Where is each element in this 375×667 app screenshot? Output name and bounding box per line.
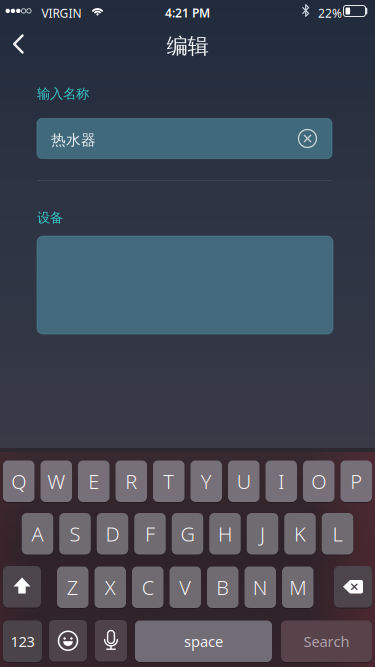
button[interactable]: R bbox=[115, 460, 147, 502]
button[interactable]: Delete bbox=[334, 566, 372, 608]
button[interactable]: P bbox=[340, 460, 372, 502]
button[interactable]: Emoji bbox=[49, 620, 87, 662]
staticText: K bbox=[294, 520, 306, 547]
button[interactable]: Q bbox=[3, 460, 34, 502]
staticText: VIRGIN bbox=[41, 5, 81, 21]
button[interactable]: Search bbox=[281, 620, 372, 662]
button[interactable]: Clear text bbox=[294, 125, 320, 151]
button[interactable]: W bbox=[40, 460, 72, 502]
staticText: Y bbox=[201, 468, 212, 495]
staticText: 4:21 PM bbox=[165, 5, 210, 21]
staticText: 热水器 bbox=[51, 131, 96, 149]
button[interactable]: S bbox=[59, 512, 91, 555]
button[interactable]: Back bbox=[0, 0, 44, 44]
staticText: O bbox=[311, 468, 326, 495]
staticText: T bbox=[163, 468, 174, 495]
staticText: Q bbox=[11, 468, 26, 495]
button[interactable]: I bbox=[265, 460, 297, 502]
staticText: C bbox=[142, 574, 154, 601]
button[interactable]: B bbox=[207, 566, 238, 608]
staticText: D bbox=[105, 520, 119, 547]
button[interactable]: Y bbox=[190, 460, 222, 502]
button[interactable]: C bbox=[132, 566, 163, 608]
button[interactable]: 热水器 bbox=[37, 118, 332, 158]
button[interactable]: Shift bbox=[3, 566, 41, 608]
staticText: 22% bbox=[318, 5, 342, 21]
button[interactable]: F bbox=[134, 512, 166, 555]
staticText: R bbox=[125, 468, 137, 495]
staticText: G bbox=[180, 520, 194, 547]
button[interactable]: L bbox=[322, 512, 353, 555]
button[interactable]: space bbox=[135, 620, 272, 662]
button[interactable]: V bbox=[169, 566, 201, 608]
button[interactable]: 123 bbox=[3, 620, 42, 662]
staticText: W bbox=[47, 468, 65, 495]
staticText: S bbox=[69, 520, 80, 547]
staticText: 输入名称 bbox=[37, 85, 89, 102]
staticText: N bbox=[253, 574, 268, 601]
button[interactable]: T bbox=[153, 460, 184, 502]
button[interactable]: N bbox=[244, 566, 276, 608]
button[interactable]: Z bbox=[57, 566, 88, 608]
button[interactable]: A bbox=[22, 512, 53, 555]
staticText: 设备 bbox=[37, 209, 63, 226]
staticText: I bbox=[278, 468, 284, 495]
button[interactable]: K bbox=[284, 512, 316, 555]
staticText: B bbox=[216, 574, 229, 601]
staticText: 编辑 bbox=[166, 33, 208, 59]
button[interactable]: E bbox=[78, 460, 109, 502]
button[interactable]: D bbox=[97, 512, 128, 555]
staticText: H bbox=[218, 520, 232, 547]
staticText: Z bbox=[67, 574, 79, 601]
staticText: space bbox=[184, 631, 223, 651]
staticText: X bbox=[105, 574, 116, 601]
button[interactable]: O bbox=[303, 460, 334, 502]
staticText: P bbox=[350, 468, 362, 495]
staticText: L bbox=[332, 520, 342, 547]
button[interactable]: M bbox=[282, 566, 313, 608]
button[interactable]: U bbox=[228, 460, 259, 502]
button[interactable]: G bbox=[172, 512, 203, 555]
button[interactable]: X bbox=[94, 566, 126, 608]
staticText: F bbox=[145, 520, 155, 547]
staticText: 123 bbox=[10, 631, 34, 651]
staticText: E bbox=[88, 468, 99, 495]
staticText: A bbox=[31, 520, 43, 547]
staticText: U bbox=[237, 468, 251, 495]
button[interactable]: Dictate bbox=[95, 620, 127, 662]
staticText: V bbox=[179, 574, 191, 601]
staticText: Search bbox=[303, 631, 349, 651]
staticText: J bbox=[260, 520, 265, 547]
button[interactable]: J bbox=[247, 512, 278, 555]
button[interactable]: H bbox=[209, 512, 241, 555]
staticText: M bbox=[289, 574, 306, 601]
